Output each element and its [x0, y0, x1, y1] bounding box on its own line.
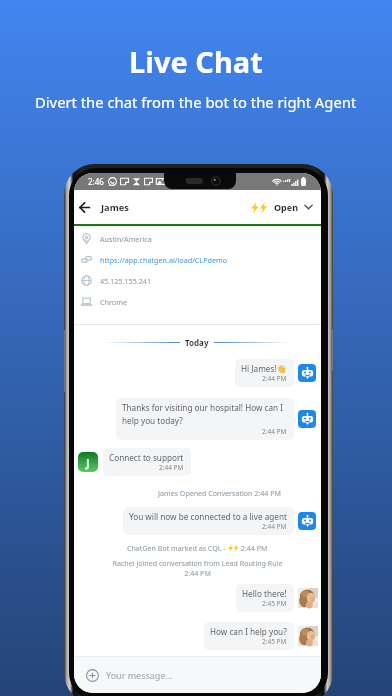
- button[interactable]: Open: [274, 201, 313, 213]
- button[interactable]: Chrome: [81, 291, 321, 312]
- button[interactable]: You will now be connected to a live agen…: [123, 507, 294, 535]
- button[interactable]: Austin/America: [81, 228, 321, 249]
- staticText: Hello there!: [242, 588, 287, 599]
- staticText: Hi James!👋: [241, 363, 287, 374]
- staticText: https://app.chatgen.ai/load/CLPdemo: [100, 255, 228, 265]
- staticText: Open: [274, 201, 299, 213]
- staticText: Thanks for visiting our hospital! How ca…: [122, 402, 287, 427]
- staticText: 2:45 PM: [262, 637, 287, 646]
- staticText: 2:44 PM: [262, 374, 287, 383]
- staticText: Chrome: [100, 297, 127, 307]
- staticText: Austin/America: [100, 234, 152, 244]
- staticText: 2:44 PM: [159, 463, 184, 472]
- staticText: 2:45 PM: [262, 599, 287, 608]
- button[interactable]: Back: [78, 201, 91, 214]
- staticText: ChatGen Bot marked as CQL -: [127, 543, 228, 553]
- staticText: James Opened Conversation 2:44 PM: [130, 488, 309, 498]
- staticText: 2:44 PM: [262, 522, 287, 531]
- staticText: Connect to support: [109, 452, 184, 463]
- staticText: J: [86, 455, 90, 470]
- button[interactable]: 45.125.155.241: [81, 270, 321, 291]
- staticText: Live Chat: [129, 42, 263, 81]
- staticText: 2:44 PM: [262, 427, 287, 436]
- staticText: 2:44 PM: [239, 543, 268, 553]
- button[interactable]: How can I help you?: [204, 622, 294, 650]
- staticText: Today: [185, 337, 209, 348]
- staticText: 45.125.155.241: [100, 276, 152, 286]
- staticText: How can I help you?: [210, 626, 287, 637]
- button[interactable]: Hello there!: [236, 584, 294, 612]
- button[interactable]: Hi James!👋: [235, 359, 294, 387]
- staticText: Rachel joined conversation from Lead Rou…: [86, 558, 309, 578]
- staticText: You will now be connected to a live agen…: [129, 511, 287, 522]
- staticText: Divert the chat from the bot to the righ…: [35, 92, 357, 112]
- button[interactable]: Add attachment: [86, 669, 99, 682]
- staticText: James: [101, 201, 129, 214]
- staticText: Your message...: [106, 669, 173, 681]
- button[interactable]: https://app.chatgen.ai/load/CLPdemo: [81, 249, 321, 270]
- button[interactable]: Connect to support: [103, 448, 191, 476]
- staticText: 2:46: [88, 176, 104, 187]
- button[interactable]: Thanks for visiting our hospital! How ca…: [116, 398, 294, 440]
